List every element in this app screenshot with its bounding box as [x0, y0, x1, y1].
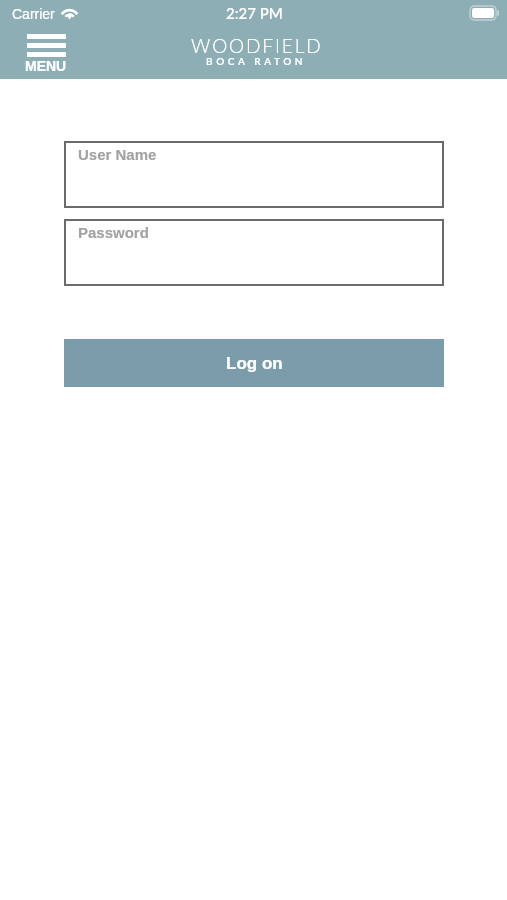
- staticText: 2:27 PM: [226, 4, 283, 22]
- button[interactable]: Menu: [25, 34, 67, 74]
- staticText: WOODFIELD: [191, 34, 323, 57]
- staticText: BOCA RATON: [206, 55, 307, 67]
- staticText: Carrier: [12, 6, 55, 22]
- button[interactable]: User Name: [64, 141, 444, 208]
- staticText: MENU: [25, 58, 67, 74]
- button[interactable]: Password: [64, 219, 444, 286]
- staticText: User Name: [78, 146, 157, 163]
- staticText: Log on: [226, 354, 283, 373]
- button[interactable]: Log on: [64, 339, 444, 387]
- staticText: Password: [78, 224, 149, 241]
